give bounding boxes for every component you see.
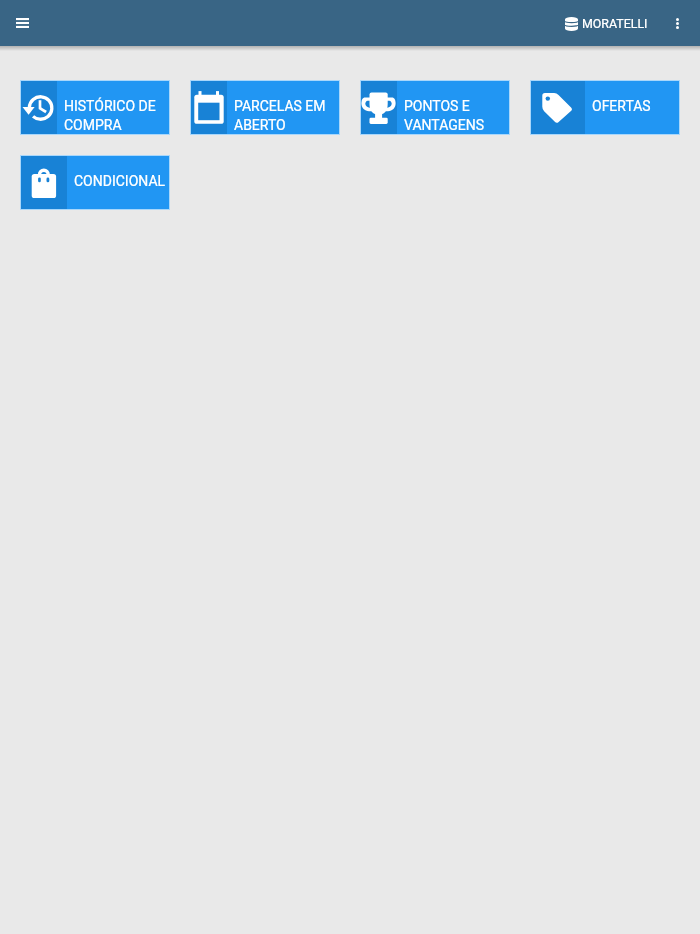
staticText: HISTÓRICO DE COMPRA <box>64 96 167 134</box>
button[interactable]: Parcelas em aberto <box>190 80 340 135</box>
staticText: PONTOS E VANTAGENS <box>404 96 507 134</box>
button[interactable]: Ofertas <box>530 80 680 135</box>
button[interactable]: Condicional <box>20 155 170 210</box>
button[interactable]: Pontos e vantagens <box>360 80 510 135</box>
staticText: OFERTAS <box>592 96 651 115</box>
button[interactable]: More options <box>662 8 692 38</box>
staticText: PARCELAS EM ABERTO <box>234 96 337 134</box>
staticText: CONDICIONAL <box>74 171 166 190</box>
staticText: MORATELLI <box>582 16 648 31</box>
button[interactable]: Histórico de compra <box>20 80 170 135</box>
button[interactable]: Open navigation menu <box>7 8 37 38</box>
